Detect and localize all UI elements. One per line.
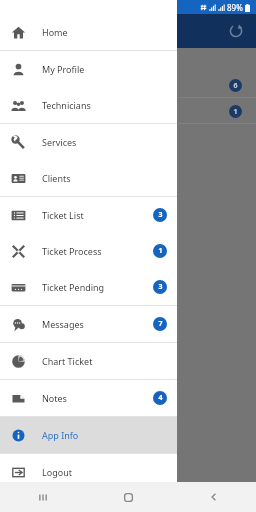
staticText: 7 [158, 319, 163, 329]
staticText: Notes [42, 392, 67, 404]
button[interactable]: Services [0, 124, 177, 160]
staticText: Messages [42, 318, 84, 330]
button[interactable]: Ticket List [0, 197, 177, 233]
staticText: Ticket Pending [42, 281, 105, 293]
staticText: 4 [158, 393, 163, 403]
button[interactable]: Recent apps [0, 482, 86, 512]
button[interactable]: Technicians [0, 87, 177, 123]
staticText: Home [42, 26, 68, 38]
button[interactable]: Ticket Pending [0, 269, 177, 305]
button[interactable]: Logout [0, 454, 177, 490]
staticText: Technicians [42, 99, 91, 111]
button[interactable]: Refresh [226, 21, 246, 41]
staticText: 6 [233, 81, 238, 91]
staticText: Chart Ticket [42, 355, 93, 367]
button[interactable]: Home [86, 482, 171, 512]
button[interactable]: Messages [0, 306, 177, 342]
button[interactable]: App Info [0, 417, 177, 453]
staticText: Logout [42, 466, 72, 478]
button[interactable]: My Profile [0, 51, 177, 87]
staticText: 1 [233, 107, 238, 117]
staticText: 3 [158, 210, 163, 220]
button[interactable]: Chart Ticket [0, 343, 177, 379]
staticText: My Profile [42, 63, 85, 75]
button[interactable]: Ticket Process [0, 233, 177, 269]
staticText: Services [42, 136, 77, 148]
button[interactable]: Clients [0, 160, 177, 196]
staticText: 89% [227, 2, 243, 13]
staticText: 3 [158, 282, 163, 292]
staticText: 1 [158, 246, 163, 256]
button[interactable]: Notes [0, 380, 177, 416]
staticText: App Info [42, 429, 79, 441]
staticText: Ticket List [42, 209, 84, 221]
staticText: Ticket Process [42, 245, 102, 257]
staticText: Clients [42, 172, 71, 184]
button[interactable]: Back [171, 482, 256, 512]
button[interactable]: Home [0, 14, 177, 50]
